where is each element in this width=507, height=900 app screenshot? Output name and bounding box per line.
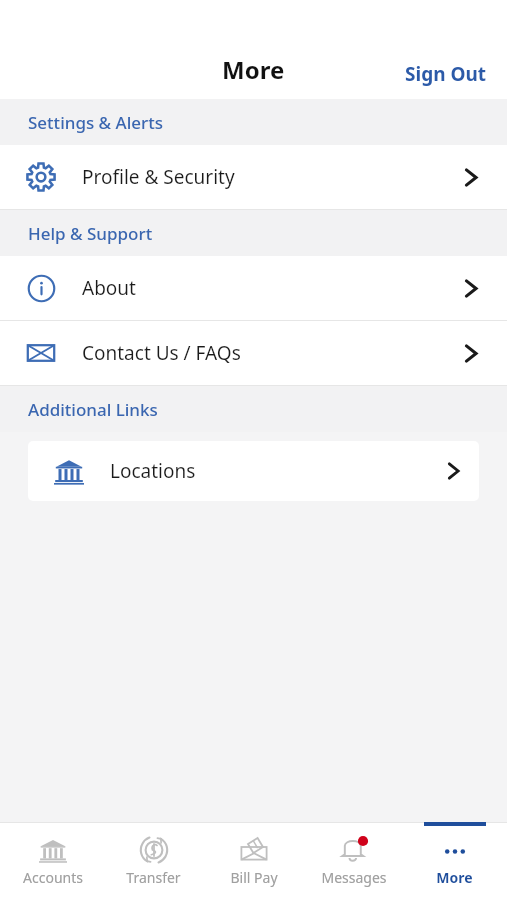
button[interactable]: Bill Pay bbox=[206, 822, 301, 900]
button[interactable]: Transfer bbox=[106, 822, 201, 900]
staticText: More bbox=[222, 53, 285, 86]
staticText: Help & Support bbox=[28, 222, 153, 245]
staticText: Accounts bbox=[23, 868, 83, 887]
staticText: Locations bbox=[110, 458, 196, 484]
staticText: Additional Links bbox=[28, 398, 158, 421]
staticText: Contact Us / FAQs bbox=[82, 340, 241, 366]
staticText: More bbox=[436, 868, 473, 887]
button[interactable]: Accounts bbox=[5, 822, 100, 900]
staticText: Profile & Security bbox=[82, 164, 235, 190]
staticText: Settings & Alerts bbox=[28, 111, 163, 134]
button[interactable]: Locations bbox=[28, 441, 479, 501]
staticText: Sign Out bbox=[405, 61, 487, 87]
button[interactable]: About bbox=[0, 256, 507, 320]
staticText: About bbox=[82, 275, 136, 301]
staticText: Transfer bbox=[126, 868, 181, 887]
staticText: Messages bbox=[321, 868, 387, 887]
button[interactable]: Contact Us / FAQs bbox=[0, 321, 507, 385]
staticText: Bill Pay bbox=[230, 868, 278, 887]
button[interactable]: More bbox=[407, 822, 502, 900]
button[interactable]: Sign Out bbox=[395, 53, 497, 95]
button[interactable]: Messages bbox=[306, 822, 401, 900]
button[interactable]: Profile & Security bbox=[0, 145, 507, 209]
